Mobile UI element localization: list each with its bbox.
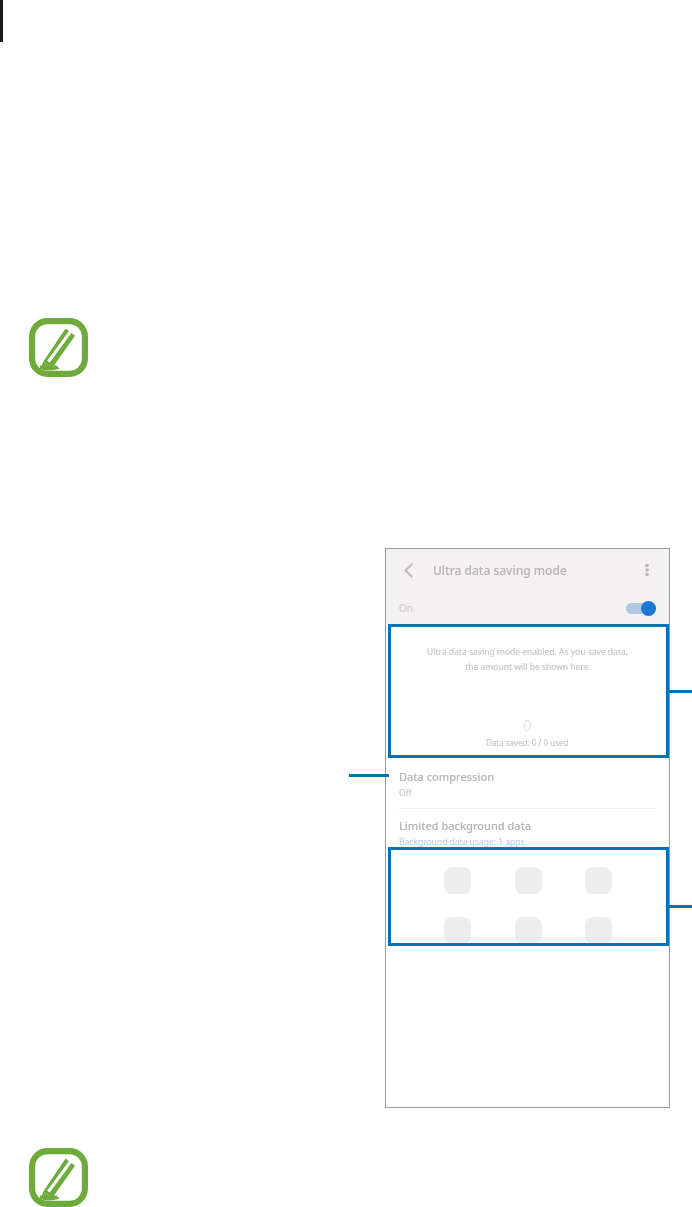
staticText: Background data usage: 1 apps (399, 836, 525, 848)
staticText: Data compression (399, 769, 495, 784)
staticText: On (399, 601, 413, 615)
staticText: 0 (523, 715, 532, 735)
staticText: the amount will be shown here. (465, 661, 591, 673)
staticText: Ultra data saving mode enabled. As you s… (427, 646, 628, 658)
button[interactable]: App 6 (581, 913, 615, 947)
button[interactable]: Limited background data (385, 809, 670, 855)
button[interactable]: App 2 (511, 863, 545, 897)
button[interactable]: App 5 (511, 913, 545, 947)
button[interactable]: App 4 (440, 913, 474, 947)
button[interactable]: More options (634, 557, 660, 583)
staticText: Data saved: 0 / 0 used (486, 737, 569, 748)
button[interactable]: Back (395, 556, 423, 584)
staticText: Off (399, 787, 412, 799)
button[interactable]: On (385, 592, 670, 624)
button[interactable]: App 1 (440, 863, 474, 897)
button[interactable]: App 3 (581, 863, 615, 897)
staticText: Limited background data (399, 818, 532, 833)
staticText: Ultra data saving mode (433, 562, 567, 578)
button[interactable]: Data compression (385, 760, 670, 808)
